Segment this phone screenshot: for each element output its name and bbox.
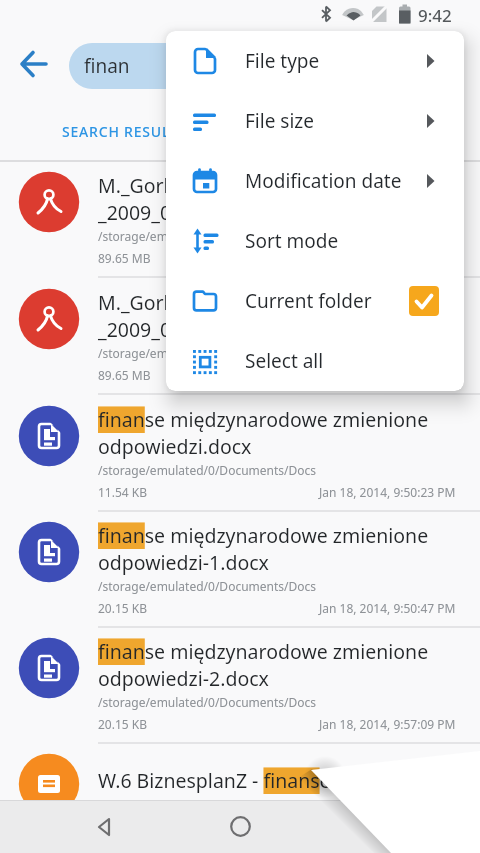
staticText: /storage/emulated/0/Documents/Docs xyxy=(98,694,317,710)
staticText: 11.54 KB xyxy=(98,484,148,500)
staticText: odpowiedzi-2.docx xyxy=(98,665,269,692)
staticText: 20.15 KB xyxy=(98,716,148,732)
button[interactable]: M._Gorbaczew xyxy=(0,279,480,395)
button[interactable]: Modification date xyxy=(166,151,464,211)
button[interactable]: File type xyxy=(166,31,464,91)
staticText: M._Gorbaczew xyxy=(98,172,232,199)
button[interactable] xyxy=(409,286,439,316)
button[interactable]: SEARCH RESULTS xyxy=(60,116,190,146)
button[interactable]: Sort mode xyxy=(166,211,464,271)
staticText: 9:42 xyxy=(418,4,452,27)
staticText: finan xyxy=(84,53,130,79)
button[interactable]: finanse międzynarodowe zmienione xyxy=(0,396,480,512)
button[interactable]: W.6 BiznesplanZ - finanse.pptx xyxy=(0,744,480,853)
staticText: 20.15 KB xyxy=(98,600,148,616)
staticText: Jan 18, 2014, 9:50:47 PM xyxy=(319,600,456,616)
button[interactable]: finan xyxy=(69,43,441,89)
staticText: /storage/emulated/0/Documents xyxy=(98,228,285,244)
staticText: _2009_04_11.pdf xyxy=(98,199,250,226)
staticText: Jan 18, 2014, 9:50:23 PM xyxy=(319,484,456,500)
staticText: odpowiedzi.docx xyxy=(98,433,252,460)
staticText: /storage/emulated/0/Documents/Docs xyxy=(98,462,317,478)
staticText: Jan 18, 2014, 9:57:09 PM xyxy=(319,716,456,732)
button[interactable]: File size xyxy=(166,91,464,151)
button[interactable]: finanse międzynarodowe zmienione xyxy=(0,512,480,628)
staticText: File size xyxy=(245,108,314,134)
staticText: Current folder xyxy=(245,288,372,314)
staticText: finanse międzynarodowe zmienione xyxy=(98,638,429,665)
staticText: M._Gorbaczew xyxy=(98,289,232,316)
button[interactable]: Current folder xyxy=(166,271,464,331)
button[interactable]: finanse międzynarodowe zmienione xyxy=(0,628,480,744)
staticText: Select all xyxy=(245,348,324,374)
staticText: /storage/emulated/0/Documents/Docs xyxy=(98,578,317,594)
staticText: 89.65 MB xyxy=(98,367,151,383)
staticText: finanse międzynarodowe zmienione xyxy=(98,522,429,549)
button[interactable]: M._Gorbaczew xyxy=(0,162,480,278)
button[interactable] xyxy=(230,816,251,837)
staticText: odpowiedzi-1.docx xyxy=(98,549,269,576)
staticText: SEARCH RESULTS xyxy=(62,122,188,141)
staticText: W.6 BiznesplanZ - finanse.pptx xyxy=(98,767,378,794)
staticText: 89.65 MB xyxy=(98,250,151,266)
staticText: Jan 11, 2014, 9:24:15 PM xyxy=(319,367,456,383)
staticText: finanse międzynarodowe zmienione xyxy=(98,406,429,433)
button[interactable]: Select all xyxy=(166,331,464,391)
staticText: Modification date xyxy=(245,168,402,194)
button[interactable] xyxy=(96,818,114,836)
staticText: /storage/emulated/0/Documents xyxy=(98,345,285,361)
staticText: File type xyxy=(245,48,320,74)
staticText: _2009_04_12.pdf xyxy=(98,316,250,343)
button[interactable] xyxy=(20,50,50,80)
staticText: Sort mode xyxy=(245,228,339,254)
